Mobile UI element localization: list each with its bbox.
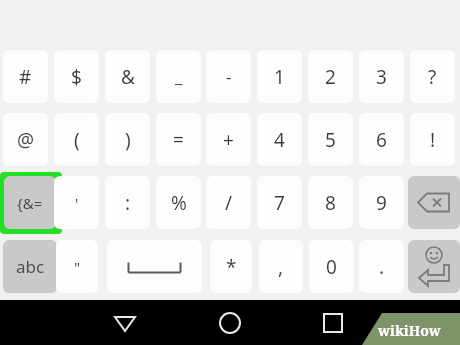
staticText: 2 [325,64,336,90]
button[interactable]: 6 [359,113,404,166]
button[interactable]: Enter [408,240,460,293]
staticText: 9 [376,190,387,216]
button[interactable]: + [206,113,251,166]
button[interactable]: @ [3,113,48,166]
button[interactable]: 0 [309,240,354,293]
button[interactable]: 1 [257,50,302,103]
button[interactable]: ? [410,50,455,103]
staticText: / [225,190,233,216]
staticText: 5 [325,127,336,153]
button[interactable]: / [206,176,251,229]
button[interactable]: 5 [308,113,353,166]
staticText: {&= [17,193,43,213]
button[interactable]: # [3,50,48,103]
staticText: & [121,64,135,90]
button[interactable]: : [105,176,150,229]
button[interactable]: % [156,176,201,229]
staticText: 8 [325,190,336,216]
button[interactable]: . [359,240,404,293]
button[interactable]: Backspace [408,176,460,229]
staticText: % [171,190,187,216]
staticText: $ [71,64,82,90]
staticText: 6 [376,127,387,153]
staticText: * [226,254,237,280]
staticText: ( [74,127,80,153]
staticText: . [379,254,385,280]
button[interactable]: = [156,113,201,166]
button[interactable]: 7 [257,176,302,229]
staticText: abc [16,255,45,278]
button[interactable]: 8 [308,176,353,229]
staticText: # [19,64,32,90]
button[interactable]: , [259,240,303,293]
button[interactable]: ) [105,113,150,166]
button[interactable]: Space [107,240,202,293]
button[interactable]: - [206,50,251,103]
button[interactable]: 4 [257,113,302,166]
staticText: ! [430,127,436,153]
button[interactable]: 9 [359,176,404,229]
staticText: + [223,127,234,153]
staticText: 1 [274,64,285,90]
staticText: " [74,257,81,277]
button[interactable]: ' [54,176,99,229]
staticText: 7 [274,190,285,216]
button[interactable]: _ [156,50,201,103]
button[interactable]: 3 [359,50,404,103]
staticText: = [173,127,184,153]
button[interactable]: ! [410,113,455,166]
staticText: ? [428,64,437,90]
button[interactable]: ( [54,113,99,166]
staticText: _ [175,65,183,88]
staticText: 0 [326,254,337,280]
button[interactable]: Back [112,310,138,336]
button[interactable]: * [210,240,252,293]
button[interactable]: Letters [3,240,57,293]
staticText: 3 [376,64,387,90]
staticText: ' [75,193,79,213]
button[interactable]: Symbols [4,176,56,229]
button[interactable]: $ [54,50,99,103]
staticText: : [125,190,131,216]
staticText: wikiHow [378,321,441,340]
button[interactable]: " [56,240,98,293]
staticText: @ [17,127,35,153]
staticText: 4 [274,127,285,153]
button[interactable]: Home [217,310,243,336]
button[interactable]: 2 [308,50,353,103]
button[interactable]: Recents [320,310,346,336]
staticText: - [226,65,232,88]
button[interactable]: & [105,50,150,103]
staticText: , [278,254,284,280]
staticText: ) [125,127,131,153]
